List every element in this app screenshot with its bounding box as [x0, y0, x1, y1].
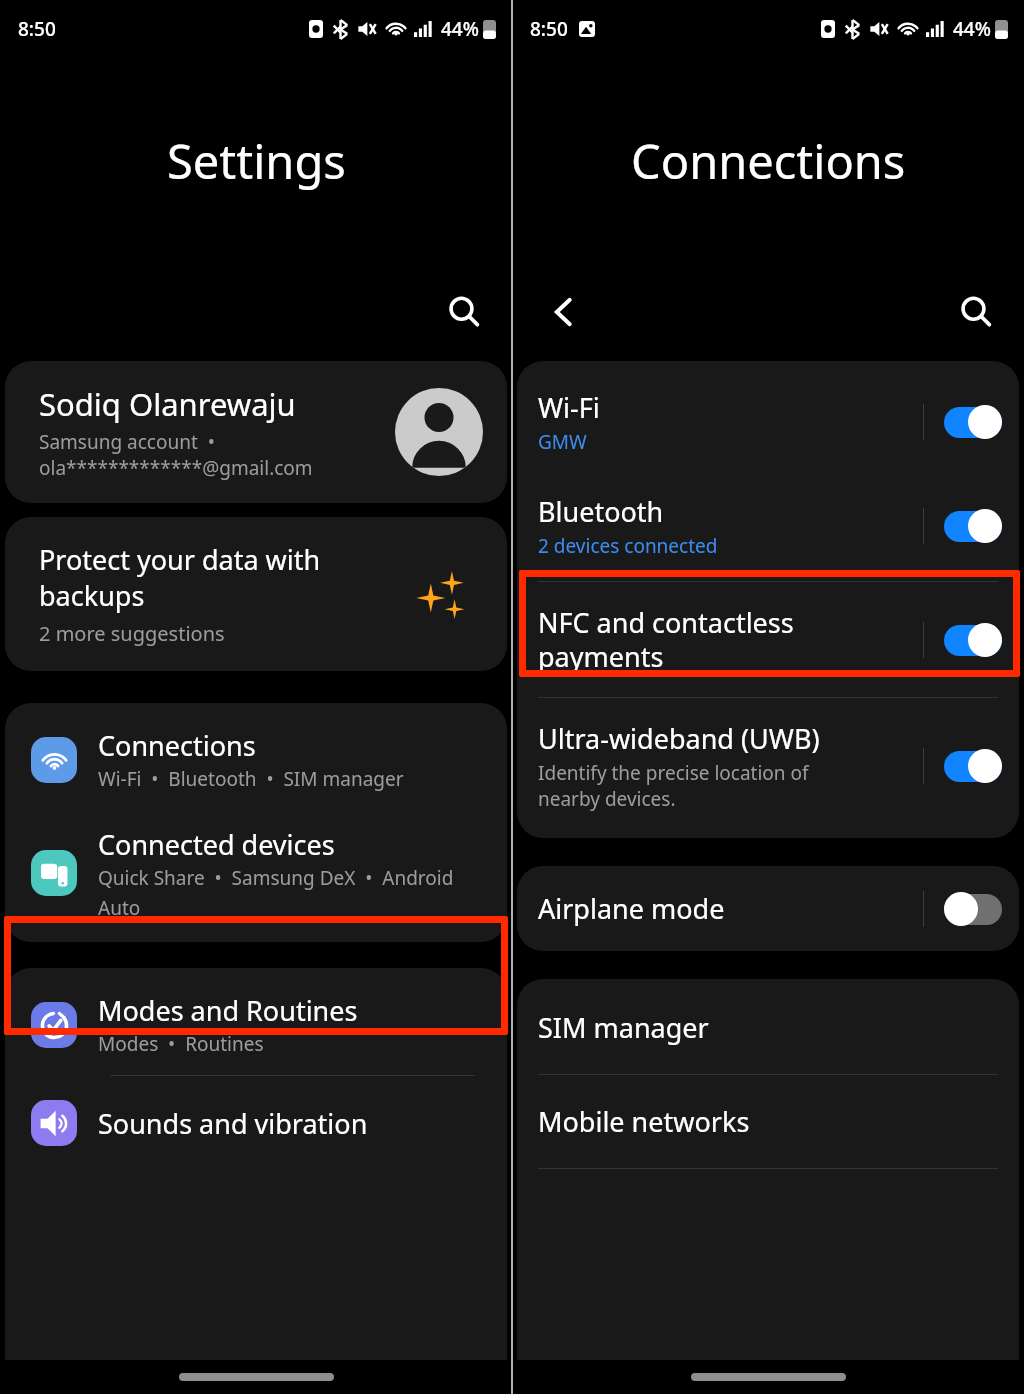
staticText: Ultra-wideband (UWB) — [538, 720, 820, 757]
staticText: 44% — [953, 16, 991, 42]
staticText: Samsung account • — [39, 429, 215, 455]
staticText: Airplane mode — [538, 890, 725, 927]
button[interactable]: Bluetooth — [517, 483, 1019, 581]
staticText: Modes • Routines — [98, 1031, 264, 1057]
button[interactable]: Connected devices — [5, 810, 507, 942]
button[interactable]: NFC and contactless payments — [517, 582, 1019, 697]
staticText: Quick Share • Samsung DeX • Android Auto — [98, 865, 454, 920]
staticText: Wi-Fi — [538, 389, 600, 426]
staticText: Bluetooth — [538, 493, 664, 530]
staticText: 2 devices connected — [538, 533, 718, 559]
staticText: SIM manager — [538, 1009, 709, 1046]
staticText: NFC and contactless payments — [538, 604, 794, 675]
button[interactable]: Airplane mode — [517, 866, 1019, 951]
button[interactable]: Wi-Fi — [517, 361, 1019, 483]
button[interactable]: Ultra-wideband (UWB) — [517, 698, 1019, 838]
button[interactable]: Sodiq Olanrewaju — [5, 361, 507, 503]
staticText: 44% — [441, 16, 479, 42]
staticText: 8:50 — [530, 16, 568, 42]
staticText: Protect your data with backups — [39, 541, 321, 614]
button[interactable]: Search — [442, 290, 486, 334]
staticText: Identify the precise location of nearby … — [538, 760, 809, 812]
staticText: Modes and Routines — [98, 992, 358, 1029]
staticText: ola*************@gmail.com — [39, 455, 313, 481]
staticText: Sodiq Olanrewaju — [39, 383, 296, 425]
staticText: Connected devices — [98, 826, 335, 863]
staticText: Wi-Fi • Bluetooth • SIM manager — [98, 766, 404, 792]
button[interactable]: Connections — [5, 703, 507, 810]
button[interactable]: Sounds and vibration — [5, 1076, 507, 1146]
staticText: Sounds and vibration — [98, 1105, 368, 1142]
staticText: Connections — [98, 727, 256, 764]
staticText: 8:50 — [18, 16, 56, 42]
button[interactable]: Protect your data with backups — [5, 517, 507, 671]
button[interactable]: Modes and Routines — [5, 968, 507, 1075]
staticText: Mobile networks — [538, 1103, 750, 1140]
staticText: Settings — [167, 129, 346, 193]
staticText: 2 more suggestions — [39, 620, 225, 647]
button[interactable]: Search — [954, 290, 998, 334]
button[interactable]: Mobile networks — [517, 1075, 1019, 1168]
button[interactable]: Back — [542, 290, 586, 334]
staticText: Connections — [631, 129, 906, 193]
button[interactable]: SIM manager — [517, 979, 1019, 1074]
staticText: GMW — [538, 429, 587, 455]
